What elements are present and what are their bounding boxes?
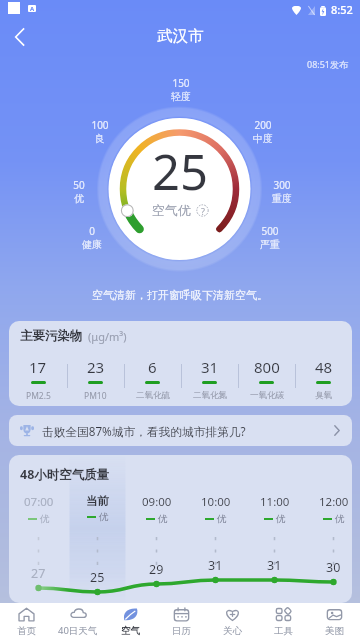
staticText: 优 [99, 511, 109, 523]
staticText: 空气清新，打开窗呼吸下清新空气。 [92, 288, 268, 302]
staticText: 轻度 [151, 90, 211, 103]
button[interactable]: 击败全国87%城市，看我的城市排第几? [9, 415, 352, 446]
staticText: 当前 [86, 494, 109, 508]
staticText: 工具 [274, 625, 293, 637]
staticText: 07:00 [24, 494, 54, 510]
staticText: 严重 [240, 238, 300, 251]
staticText: 150 [151, 76, 211, 90]
staticText: 日历 [172, 625, 191, 637]
staticText: PM10 [84, 390, 107, 402]
staticText: 31 [201, 357, 219, 377]
staticText: (μg/m³) [88, 329, 127, 344]
staticText: 08:51发布 [307, 58, 349, 70]
staticText: 优 [217, 513, 227, 525]
staticText: 17 [29, 357, 47, 377]
staticText: ? [201, 205, 205, 217]
staticText: 30 [326, 559, 341, 576]
staticText: 500 [240, 224, 300, 238]
staticText: 800 [254, 357, 280, 377]
staticText: 健康 [62, 238, 122, 251]
button[interactable]: 日历 [156, 603, 207, 640]
staticText: 27 [31, 565, 46, 582]
staticText: 09:00 [142, 494, 172, 510]
button[interactable]: 美图 [309, 603, 360, 640]
staticText: 优 [276, 513, 286, 525]
staticText: 23 [87, 357, 105, 377]
staticText: 50 [49, 178, 109, 192]
staticText: 武汉市 [157, 26, 204, 46]
staticText: 二氧化硫 [136, 390, 170, 401]
staticText: PM2.5 [26, 390, 51, 402]
staticText: 29 [149, 561, 164, 578]
button[interactable]: 工具 [258, 603, 309, 640]
button[interactable]: 空气 [104, 603, 156, 640]
staticText: 优 [49, 192, 109, 205]
staticText: 25 [90, 569, 105, 586]
staticText: 良 [70, 132, 130, 145]
staticText: 31 [267, 557, 282, 574]
staticText: 重度 [252, 192, 312, 205]
staticText: 8:52 [331, 2, 353, 17]
button[interactable]: 首页 [0, 603, 52, 640]
staticText: 首页 [17, 625, 36, 637]
staticText: 击败全国87%城市，看我的城市排第几? [42, 423, 246, 439]
staticText: 优 [40, 513, 50, 525]
staticText: 空气优 [152, 202, 191, 218]
staticText: 10:00 [201, 494, 231, 510]
staticText: 优 [335, 513, 345, 525]
staticText: 6 [148, 357, 157, 377]
staticText: 0 [62, 224, 122, 238]
staticText: 关心 [223, 625, 242, 637]
staticText: 48 [315, 357, 333, 377]
staticText: A [30, 5, 35, 12]
staticText: 11:00 [260, 494, 290, 510]
staticText: 100 [70, 118, 130, 132]
staticText: 48小时空气质量 [20, 466, 110, 483]
button[interactable]: 40日天气 [52, 603, 104, 640]
staticText: 优 [158, 513, 168, 525]
staticText: 二氧化氮 [193, 390, 227, 401]
staticText: 12:00 [319, 494, 349, 510]
staticText: 200 [233, 118, 293, 132]
staticText: 一氧化碳 [250, 390, 284, 401]
staticText: 25 [80, 138, 280, 205]
staticText: 美图 [325, 625, 344, 637]
staticText: 主要污染物 [20, 328, 83, 344]
staticText: 臭氧 [315, 390, 332, 401]
staticText: 中度 [233, 132, 293, 145]
staticText: 空气 [121, 625, 140, 637]
staticText: 31 [208, 557, 223, 574]
button[interactable]: Back [0, 22, 38, 52]
staticText: 40日天气 [58, 624, 98, 637]
staticText: 300 [252, 178, 312, 192]
button[interactable]: 关心 [207, 603, 258, 640]
